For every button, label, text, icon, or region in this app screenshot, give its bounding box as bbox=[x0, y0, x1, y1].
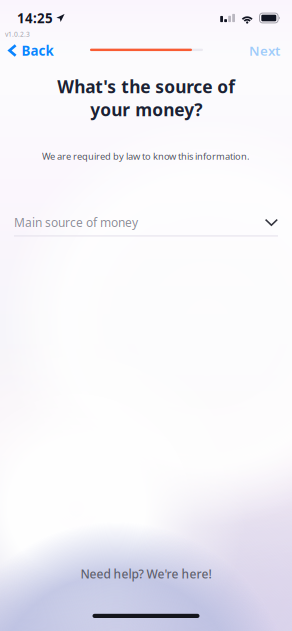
staticText: Need help? We're here! bbox=[80, 566, 211, 582]
button[interactable]: Back bbox=[0, 38, 63, 63]
staticText: What's the source of your money? bbox=[57, 75, 235, 121]
staticText: Main source of money bbox=[14, 214, 138, 230]
staticText: Next bbox=[249, 42, 280, 59]
staticText: We are required by law to know this info… bbox=[42, 150, 250, 162]
button[interactable]: Next bbox=[239, 38, 292, 63]
button[interactable]: Main source of money bbox=[0, 214, 292, 236]
button[interactable]: Need help? We're here! bbox=[58, 559, 233, 589]
staticText: Back bbox=[21, 42, 53, 59]
staticText: v1.0.2.3 bbox=[5, 30, 30, 38]
staticText: 14:25 bbox=[17, 9, 53, 27]
